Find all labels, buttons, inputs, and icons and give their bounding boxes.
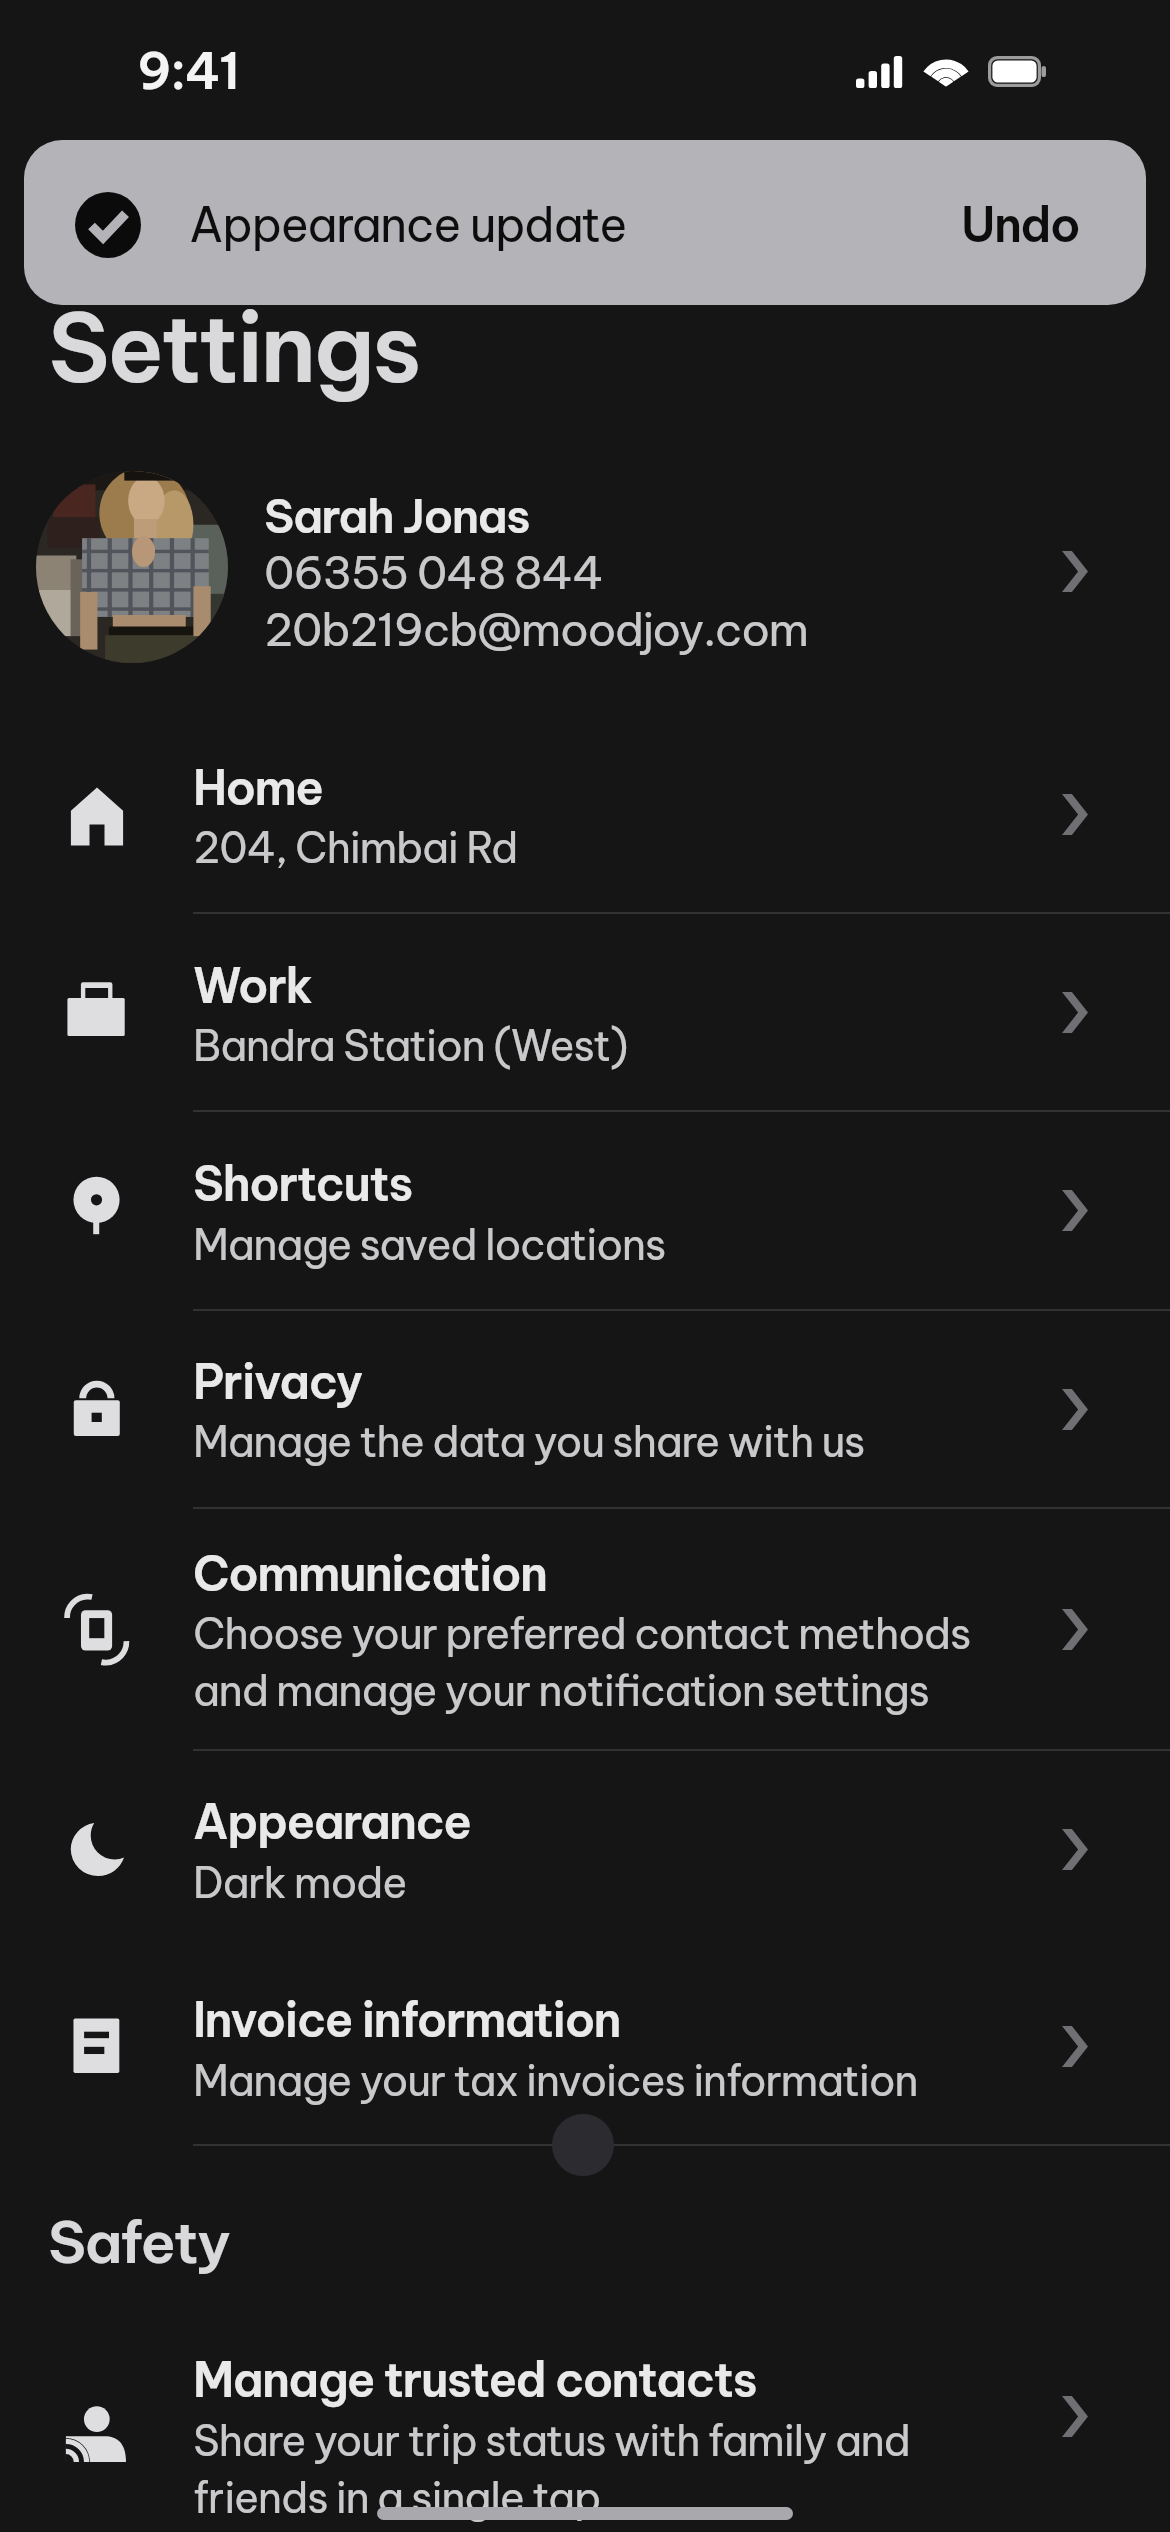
staticText: Dark mode <box>193 1856 407 1909</box>
button[interactable]: Invoice information <box>0 1948 1170 2144</box>
staticText: Manage your tax invoices information <box>193 2054 918 2107</box>
button[interactable]: Work <box>0 913 1170 1110</box>
staticText: Appearance update <box>189 195 627 254</box>
staticText: Appearance <box>193 1792 471 1851</box>
button[interactable]: Appearance update <box>24 140 1146 305</box>
button[interactable]: Sarah Jonas <box>0 450 1170 700</box>
staticText: Communication <box>193 1544 547 1603</box>
staticText: Settings <box>48 288 420 407</box>
staticText: 204, Chimbai Rd <box>193 821 518 874</box>
staticText: Share your trip status with family and <box>193 2414 910 2467</box>
staticText: Manage the data you share with us <box>193 1415 865 1468</box>
staticText: Invoice information <box>193 1990 621 2049</box>
staticText: Sarah Jonas <box>264 487 530 545</box>
staticText: Choose your preferred contact methods <box>193 1607 971 1660</box>
staticText: 06355 048 844 <box>264 544 603 601</box>
staticText: Manage saved locations <box>193 1218 666 1271</box>
staticText: friends in a single tap <box>193 2471 601 2524</box>
staticText: Safety <box>48 2205 230 2278</box>
staticText: 9:41 <box>137 39 239 102</box>
button[interactable]: Undo <box>939 170 1129 275</box>
button[interactable]: Home <box>0 715 1170 912</box>
staticText: Home <box>193 758 323 817</box>
staticText: Work <box>193 956 312 1015</box>
staticText: Bandra Station (West) <box>193 1019 628 1072</box>
staticText: Manage trusted contacts <box>193 2350 757 2409</box>
button[interactable]: Appearance <box>0 1750 1170 1947</box>
staticText: Undo <box>961 195 1080 254</box>
button[interactable]: Communication <box>0 1508 1170 1749</box>
button[interactable]: Shortcuts <box>0 1111 1170 1309</box>
button[interactable]: Manage trusted contacts <box>0 2300 1170 2532</box>
staticText: and manage your notification settings <box>193 1664 929 1717</box>
button[interactable]: Privacy <box>0 1310 1170 1507</box>
staticText: 20b219cb@moodjoy.com <box>264 601 808 658</box>
staticText: Privacy <box>193 1352 363 1411</box>
staticText: Shortcuts <box>193 1154 413 1213</box>
